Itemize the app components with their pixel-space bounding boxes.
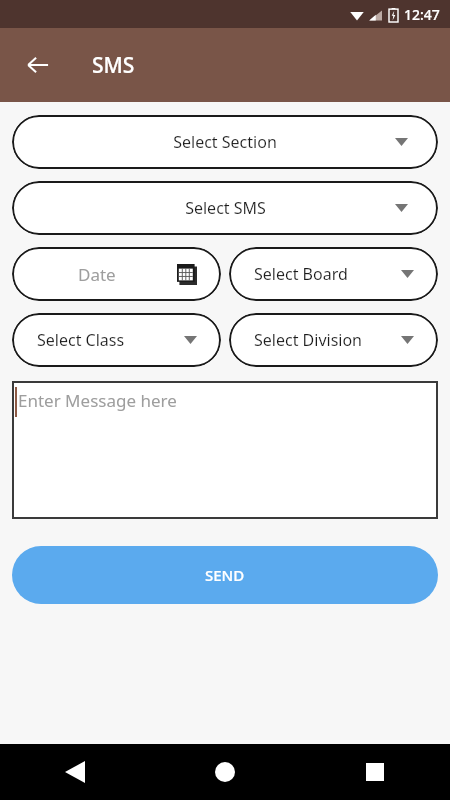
- button[interactable]: Select Board: [229, 247, 438, 301]
- button[interactable]: Back: [0, 744, 150, 800]
- button[interactable]: Date: [12, 247, 221, 301]
- button[interactable]: Select SMS: [12, 181, 438, 235]
- button[interactable]: Select Section: [12, 115, 438, 169]
- staticText: Select Division: [254, 329, 363, 351]
- staticText: SEND: [205, 565, 245, 585]
- staticText: Enter Message here: [18, 389, 177, 412]
- staticText: 12:47: [404, 5, 440, 24]
- staticText: Select Section: [173, 131, 277, 153]
- staticText: Select Class: [37, 329, 125, 351]
- button[interactable]: Select Class: [12, 313, 221, 367]
- staticText: Select SMS: [185, 197, 266, 219]
- button[interactable]: Home: [150, 744, 300, 800]
- button[interactable]: Back: [12, 39, 64, 91]
- button[interactable]: SEND: [12, 546, 438, 604]
- staticText: SMS: [92, 51, 135, 80]
- button[interactable]: Select Division: [229, 313, 438, 367]
- staticText: Date: [78, 263, 116, 286]
- button[interactable]: Recent apps: [300, 744, 450, 800]
- staticText: Select Board: [254, 263, 348, 285]
- button[interactable]: Enter Message here: [12, 381, 438, 519]
